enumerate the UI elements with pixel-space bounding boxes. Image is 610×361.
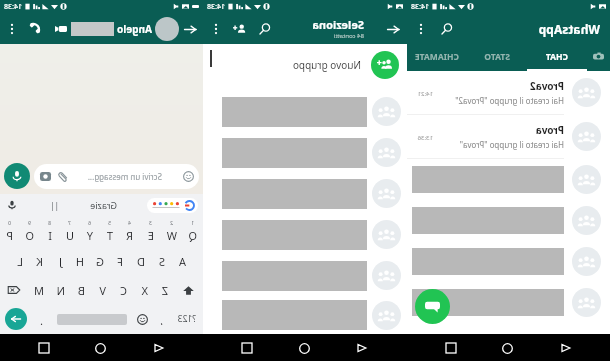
staticText: 4 [128,220,131,227]
button[interactable]: More options [411,19,431,39]
staticText: Hai creato il gruppo "Prova2" [455,95,564,106]
button[interactable]: Shift [175,276,203,304]
button[interactable] [203,255,407,296]
staticText: A [178,254,186,269]
button[interactable]: H [70,246,90,276]
button[interactable]: Z [155,276,175,304]
button[interactable]: Back [383,18,405,40]
button[interactable]: Back [553,335,579,361]
staticText: Y [86,228,93,243]
button[interactable]: ?123 [175,313,198,325]
button[interactable]: Search [254,18,276,40]
button[interactable] [203,132,407,173]
button[interactable]: New contact [230,19,250,39]
button[interactable]: Recents [234,335,260,361]
button[interactable]: B [71,276,92,304]
button[interactable]: Prova [407,115,610,158]
staticText: K [36,254,43,269]
button[interactable]: L [10,246,30,276]
button[interactable]: Emoji [136,312,150,326]
button[interactable]: STATO [467,44,527,69]
button[interactable]: Back [146,335,172,361]
button[interactable]: More options [206,19,226,39]
button[interactable]: Back [180,18,202,40]
button[interactable]: Recents [31,335,57,361]
button[interactable]: Home [292,335,318,361]
button[interactable]: 6 [80,216,100,246]
button[interactable]: 5 [100,216,120,246]
staticText: 1 [191,220,194,227]
button[interactable]: CHIAMATE [407,44,467,69]
button[interactable]: 0 [0,216,20,246]
button[interactable]: Backspace [0,276,29,304]
staticText: 5 [108,220,111,227]
staticText: 6 [88,220,91,227]
button[interactable]: V [92,276,113,304]
button[interactable] [407,241,610,282]
button[interactable]: S [151,246,172,276]
button[interactable]: X [134,276,155,304]
staticText: 3 [149,220,152,227]
button[interactable]: 3 [140,216,161,246]
button[interactable]: Home [495,335,521,361]
button[interactable] [407,159,610,200]
button[interactable]: J [50,246,70,276]
staticText: I [48,228,52,243]
button[interactable] [407,200,610,241]
button[interactable]: C [113,276,134,304]
button[interactable]: N [50,276,71,304]
button[interactable]: F [110,246,130,276]
button[interactable]: Call [24,19,44,39]
staticText: STATO [484,51,510,63]
button[interactable]: Voice input [5,198,19,212]
button[interactable]: Voice message [4,163,30,189]
button[interactable]: Video call [51,19,71,39]
staticText: CHIAMATE [414,51,459,63]
button[interactable]: More options [3,19,21,39]
staticText: E [147,228,154,243]
button[interactable]: Home [88,335,114,361]
button[interactable]: A [172,246,193,276]
staticText: CHAT [545,51,568,63]
button[interactable]: Send [5,308,27,330]
button[interactable] [147,198,198,213]
button[interactable]: K [30,246,50,276]
button[interactable] [203,214,407,255]
button[interactable]: New chat [415,289,450,324]
staticText: T [106,228,113,243]
staticText: Hai creato il gruppo "Prova" [459,139,564,150]
staticText: W [166,228,177,243]
button[interactable]: 7 [60,216,80,246]
button[interactable]: Nuovo gruppo [203,46,407,84]
button[interactable] [203,91,407,132]
button[interactable]: CHAT [527,44,587,69]
staticText: L [17,254,23,269]
staticText: 9 [28,220,31,227]
button[interactable]: 8 [40,216,60,246]
button[interactable]: D [130,246,151,276]
button[interactable]: . [36,313,48,325]
button[interactable]: 4 [120,216,140,246]
button[interactable] [203,296,407,334]
button[interactable] [407,282,610,323]
button[interactable]: Camera [587,44,610,69]
staticText: M [34,283,44,298]
button[interactable]: M [29,276,50,304]
staticText: 7 [68,220,71,227]
staticText: P [6,228,13,243]
button[interactable]: 2 [161,216,182,246]
button[interactable]: G [90,246,110,276]
button[interactable]: Scrivi un messagg... [34,164,199,189]
staticText: Scrivi un messagg... [87,171,162,182]
button[interactable]: Prova2 [407,71,610,114]
button[interactable]: 9 [20,216,40,246]
button[interactable]: Back [349,335,375,361]
button[interactable]: 1 [182,216,203,246]
button[interactable]: , [156,313,168,325]
staticText: B [77,283,85,298]
staticText: U [65,228,74,243]
button[interactable] [203,173,407,214]
button[interactable]: Search [436,18,458,40]
button[interactable]: Recents [438,335,464,361]
